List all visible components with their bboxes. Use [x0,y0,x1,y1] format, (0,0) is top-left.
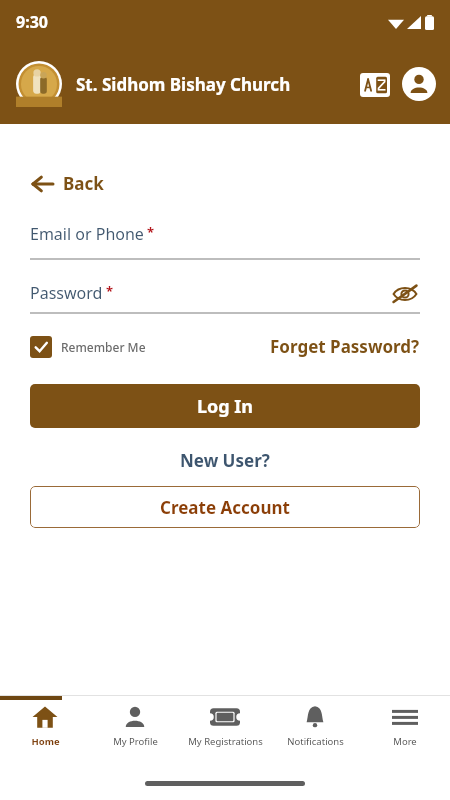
button[interactable]: Remember Me [30,336,146,358]
button[interactable]: My Registrations [180,703,270,765]
staticText: * [106,282,114,300]
button[interactable]: Log In [30,384,420,428]
staticText: 9:30 [16,11,48,33]
button[interactable]: More [360,703,450,765]
button[interactable]: Create Account [30,486,420,528]
staticText: New User? [180,449,270,472]
button[interactable]: New User? [176,445,274,476]
staticText: Remember Me [61,339,146,355]
button[interactable]: Forget Password? [270,335,420,358]
staticText: My Profile [113,735,158,748]
staticText: Notifications [287,735,344,748]
staticText: More [393,735,417,748]
staticText: Home [31,735,60,748]
button[interactable]: Back [24,166,112,201]
staticText: Email or Phone [30,223,144,245]
button[interactable]: Account [402,67,436,101]
button[interactable]: Translate [360,72,390,97]
staticText: Forget Password? [270,335,420,358]
button[interactable]: Home [0,703,90,765]
button[interactable]: My Profile [90,703,180,765]
staticText: Back [63,172,104,195]
button[interactable]: Show password [390,282,420,306]
staticText: Log In [197,394,254,419]
button[interactable]: Notifications [270,703,360,765]
staticText: St. Sidhom Bishay Church [76,73,291,96]
staticText: * [147,223,155,241]
staticText: Password [30,282,103,304]
staticText: My Registrations [188,735,263,748]
staticText: Create Account [160,496,290,519]
